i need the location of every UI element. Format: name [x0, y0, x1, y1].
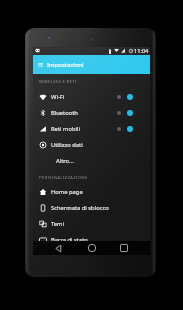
staticText: Altro...: [56, 157, 74, 165]
button[interactable]: Temi: [33, 216, 150, 232]
staticText: PERSONALIZZAZIONE: [39, 174, 88, 180]
button[interactable]: Back: [48, 241, 68, 255]
staticText: Wi-Fi: [51, 93, 65, 101]
button[interactable]: Wi-Fi: [33, 89, 150, 105]
button[interactable]: Recent apps: [114, 241, 134, 255]
staticText: Reti mobili: [51, 125, 80, 133]
staticText: 11:04: [134, 47, 149, 55]
button[interactable]: Schermata di sblocco: [33, 200, 150, 216]
button[interactable]: Altro...: [33, 153, 150, 169]
button[interactable]: Bluetooth: [33, 105, 150, 121]
staticText: Schermata di sblocco: [51, 204, 109, 212]
staticText: Temi: [51, 220, 65, 228]
staticText: WIRELESS E RETI: [39, 78, 77, 84]
button[interactable]: Barra di stato: [33, 232, 150, 248]
staticText: Utilizzo dati: [51, 141, 83, 149]
button[interactable]: Utilizzo dati: [33, 137, 150, 153]
button[interactable]: Home page: [33, 184, 150, 200]
button[interactable]: Home: [82, 241, 102, 255]
other: Open navigation menu: [38, 62, 43, 67]
staticText: Impostazioni: [47, 61, 84, 69]
staticText: Home page: [51, 188, 83, 196]
button[interactable]: Reti mobili: [33, 121, 150, 137]
staticText: Barra di stato: [51, 236, 88, 244]
staticText: Bluetooth: [51, 109, 78, 117]
button[interactable]: Open navigation menu: [33, 55, 150, 74]
